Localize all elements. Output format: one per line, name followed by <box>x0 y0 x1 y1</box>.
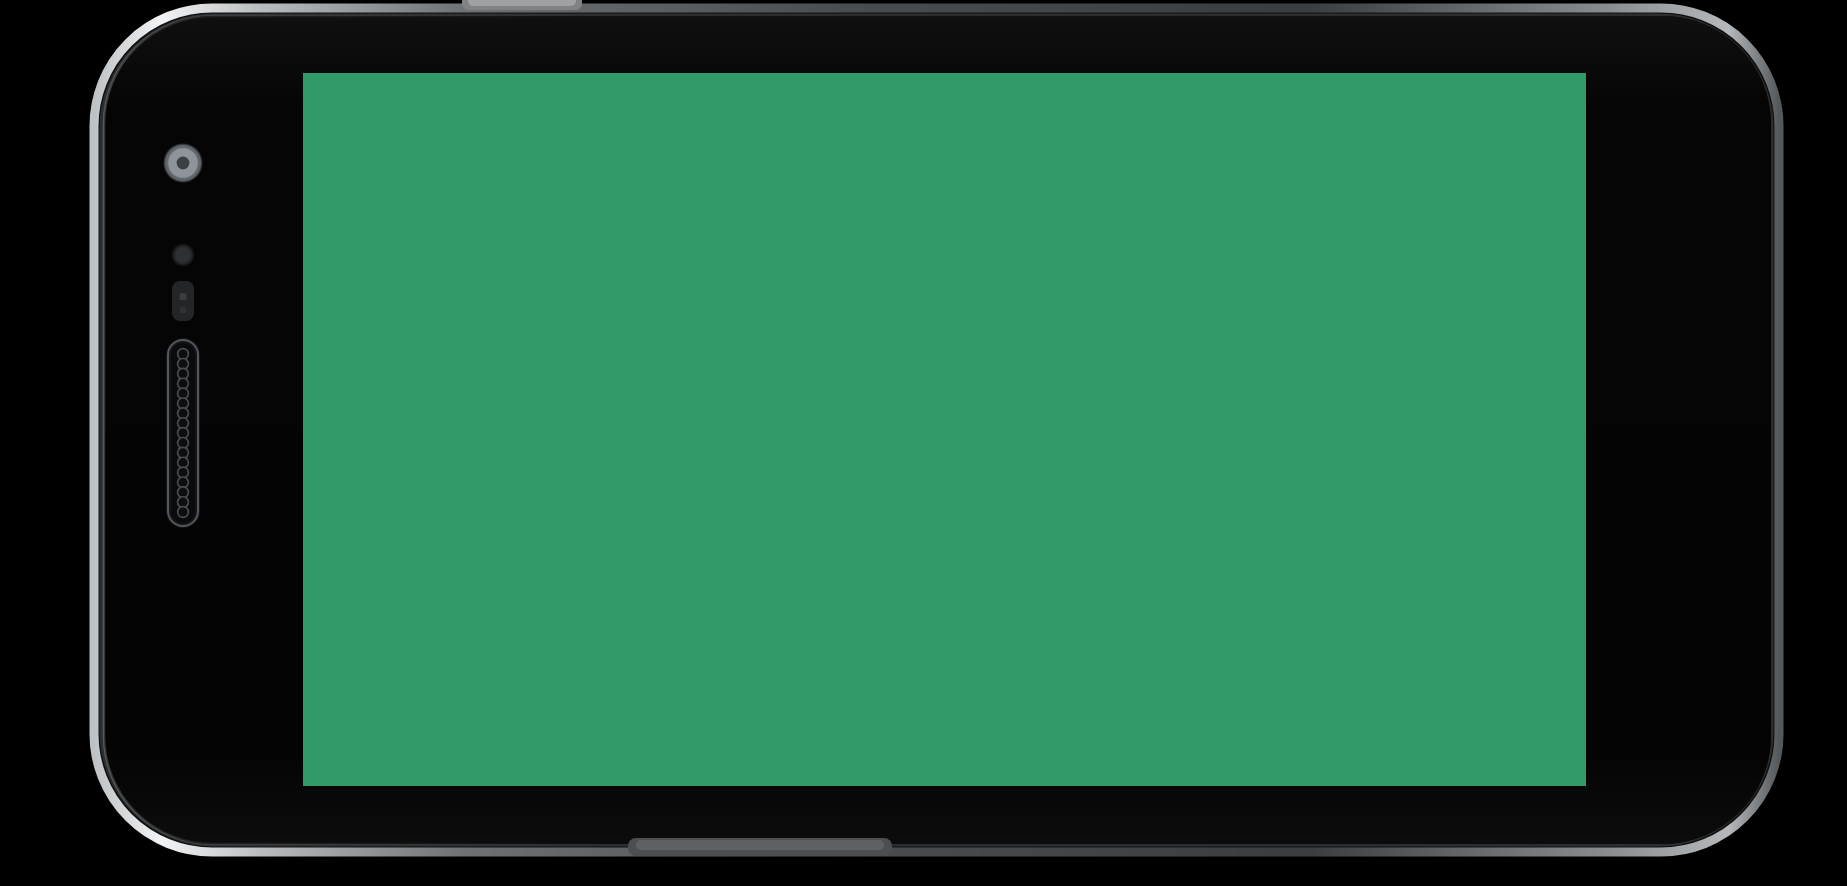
button[interactable]: App screen <box>0 0 1847 886</box>
